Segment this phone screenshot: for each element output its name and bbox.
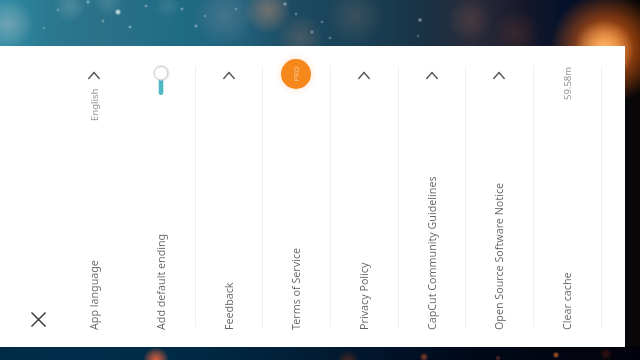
button[interactable]: Close [26, 307, 51, 332]
button[interactable]: Pro [281, 59, 311, 89]
staticText: Terms of Service [289, 247, 304, 330]
staticText: English [88, 88, 101, 121]
staticText: 59.58m [561, 66, 574, 100]
button[interactable]: Feedback [195, 46, 263, 347]
staticText: App language [87, 260, 102, 330]
staticText: CapCut Community Guidelines [425, 176, 440, 330]
button[interactable]: App language [60, 46, 128, 347]
staticText: Add default ending [154, 233, 169, 330]
staticText: Privacy Policy [357, 262, 372, 330]
staticText: PRO [291, 66, 301, 82]
staticText: Clear cache [560, 272, 575, 330]
button[interactable]: Clear cache [533, 46, 601, 347]
staticText: Open Source Software Notice [492, 182, 507, 330]
staticText: Feedback [222, 282, 237, 330]
button[interactable]: Toggle default ending [153, 66, 169, 95]
button[interactable]: Add default ending [127, 46, 195, 347]
button[interactable]: Terms of Service [262, 46, 330, 347]
button[interactable]: Privacy Policy [330, 46, 398, 347]
button[interactable]: Open Source Software Notice [465, 46, 533, 347]
button[interactable]: CapCut Community Guidelines [398, 46, 466, 347]
